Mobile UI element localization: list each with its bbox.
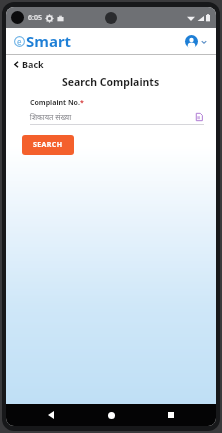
button[interactable]: eSmart home	[14, 31, 72, 51]
staticText: Back	[22, 58, 44, 70]
button[interactable]: Home	[96, 404, 126, 426]
button[interactable]: शिकायत संख्या	[30, 111, 204, 122]
button[interactable]: SEARCH	[22, 135, 74, 155]
staticText: Search Complaints	[62, 75, 160, 89]
staticText: Complaint No.	[30, 98, 80, 108]
button[interactable]: Back	[36, 404, 66, 426]
staticText: SEARCH	[33, 140, 63, 150]
button[interactable]: Back	[13, 58, 44, 70]
staticText: *	[80, 98, 84, 108]
staticText: 6:05	[28, 13, 42, 23]
button[interactable]: Scan complaint number	[193, 111, 204, 122]
staticText: शिकायत संख्या	[30, 112, 72, 122]
button[interactable]: Account menu	[185, 35, 207, 48]
staticText: Smart	[26, 31, 72, 51]
staticText: e	[17, 36, 22, 47]
button[interactable]: Recent apps	[156, 404, 186, 426]
